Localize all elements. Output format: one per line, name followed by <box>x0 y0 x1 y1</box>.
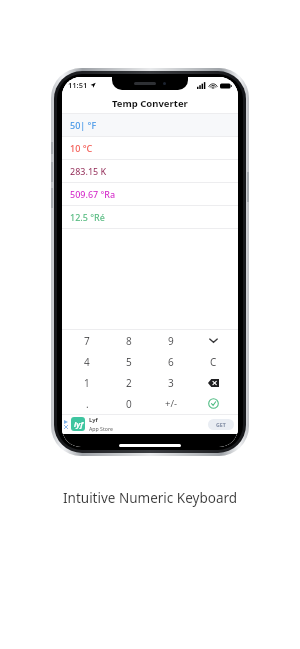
button[interactable]: 9 <box>150 330 192 351</box>
button[interactable]: 283.15 K <box>62 160 238 182</box>
staticText: 6 <box>168 355 174 369</box>
button[interactable]: 4 <box>66 351 108 372</box>
staticText: App Store <box>89 425 113 432</box>
staticText: 50| °F <box>70 119 97 131</box>
staticText: 4 <box>84 355 90 369</box>
button[interactable]: 7 <box>66 330 108 351</box>
button[interactable]: GET <box>208 419 234 430</box>
staticText: +/- <box>165 397 178 410</box>
staticText: 2 <box>126 376 132 390</box>
staticText: 12.5 °Ré <box>70 211 105 223</box>
button[interactable]: 2 <box>108 372 150 393</box>
button[interactable]: C <box>192 351 234 372</box>
staticText: Intuitive Numeric Keyboard <box>63 489 238 507</box>
staticText: 0 <box>126 397 132 411</box>
button[interactable]: Confirm <box>192 393 234 414</box>
staticText: 8 <box>126 334 132 348</box>
button[interactable]: 10 °C <box>62 137 238 159</box>
staticText: 7 <box>84 334 90 348</box>
staticText: . <box>86 397 89 411</box>
staticText: Lyf <box>89 416 98 424</box>
button[interactable]: 5 <box>108 351 150 372</box>
staticText: GET <box>216 421 226 428</box>
staticText: 11:51 <box>68 80 88 90</box>
button[interactable]: +/- <box>150 393 192 414</box>
staticText: 1 <box>84 376 90 390</box>
button[interactable]: 0 <box>108 393 150 414</box>
staticText: C <box>210 355 217 369</box>
staticText: 3 <box>168 376 174 390</box>
button[interactable]: 509.67 °Ra <box>62 183 238 205</box>
button[interactable]: 1 <box>66 372 108 393</box>
staticText: 509.67 °Ra <box>70 188 116 200</box>
button[interactable]: 50| °F <box>62 114 238 136</box>
button[interactable]: 3 <box>150 372 192 393</box>
button[interactable]: Backspace <box>192 372 234 393</box>
button[interactable]: Hide keyboard <box>192 330 234 351</box>
staticText: lyf <box>74 419 83 429</box>
staticText: 10 °C <box>70 142 93 154</box>
staticText: 283.15 K <box>70 165 107 177</box>
staticText: Temp Converter <box>112 97 188 110</box>
button[interactable]: 12.5 °Ré <box>62 206 238 228</box>
button[interactable]: 6 <box>150 351 192 372</box>
button[interactable]: . <box>66 393 108 414</box>
button[interactable]: 8 <box>108 330 150 351</box>
staticText: 9 <box>168 334 174 348</box>
staticText: 5 <box>126 355 132 369</box>
